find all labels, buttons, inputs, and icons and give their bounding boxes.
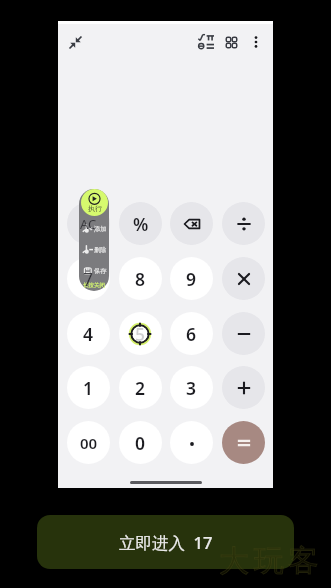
button[interactable] [222,421,265,464]
button[interactable]: 2 [119,366,162,409]
staticText: % [133,212,149,236]
button[interactable]: Collapse [62,29,88,55]
button[interactable] [222,366,265,409]
staticText: 大玩客 [219,542,324,580]
button[interactable]: 1 [67,366,110,409]
staticText: 7 [83,267,94,291]
staticText: 0 [135,431,146,455]
staticText: 5 [135,322,146,346]
staticText: AC [80,215,97,233]
button[interactable]: 5 [119,312,162,355]
staticText: 长按关闭 [83,282,105,289]
staticText: 大玩客 [219,542,324,580]
button[interactable] [222,257,265,300]
button[interactable]: 执行 [81,189,108,216]
staticText: 7 [83,267,94,291]
button[interactable]: 8 [119,257,162,300]
button[interactable]: 立即进入 17 [37,515,294,569]
staticText: 3 [186,376,197,400]
button[interactable]: 00 [67,421,110,464]
staticText: 00 [80,433,98,453]
button[interactable]: % [119,202,162,245]
button[interactable]: 0 [119,421,162,464]
button[interactable]: 保存 [79,263,109,279]
staticText: 保存 [94,267,107,275]
staticText: 删除 [94,246,107,254]
button[interactable] [222,312,265,355]
button[interactable]: 4 [67,312,110,355]
staticText: 4 [83,322,94,346]
button[interactable]: 7 [67,257,110,300]
staticText: AC [79,214,99,234]
button[interactable]: AC [67,202,110,245]
button[interactable]: More options [243,29,269,55]
button[interactable] [170,421,213,464]
button[interactable]: Scientific calculator [193,29,219,55]
button[interactable]: 添加 [79,221,109,237]
button[interactable]: Grid layout [218,29,244,55]
staticText: 1 [83,376,94,400]
button[interactable]: 9 [170,257,213,300]
staticText: 2 [135,376,146,400]
button[interactable]: 删除 [79,242,109,258]
staticText: 9 [186,267,197,291]
staticText: 8 [135,267,146,291]
button[interactable] [222,202,265,245]
button[interactable]: 3 [170,366,213,409]
button[interactable] [170,202,213,245]
staticText: 立即进入 17 [119,531,213,554]
staticText: 执行 [88,204,102,213]
staticText: 添加 [94,225,107,233]
staticText: 6 [186,322,197,346]
button[interactable]: 6 [170,312,213,355]
